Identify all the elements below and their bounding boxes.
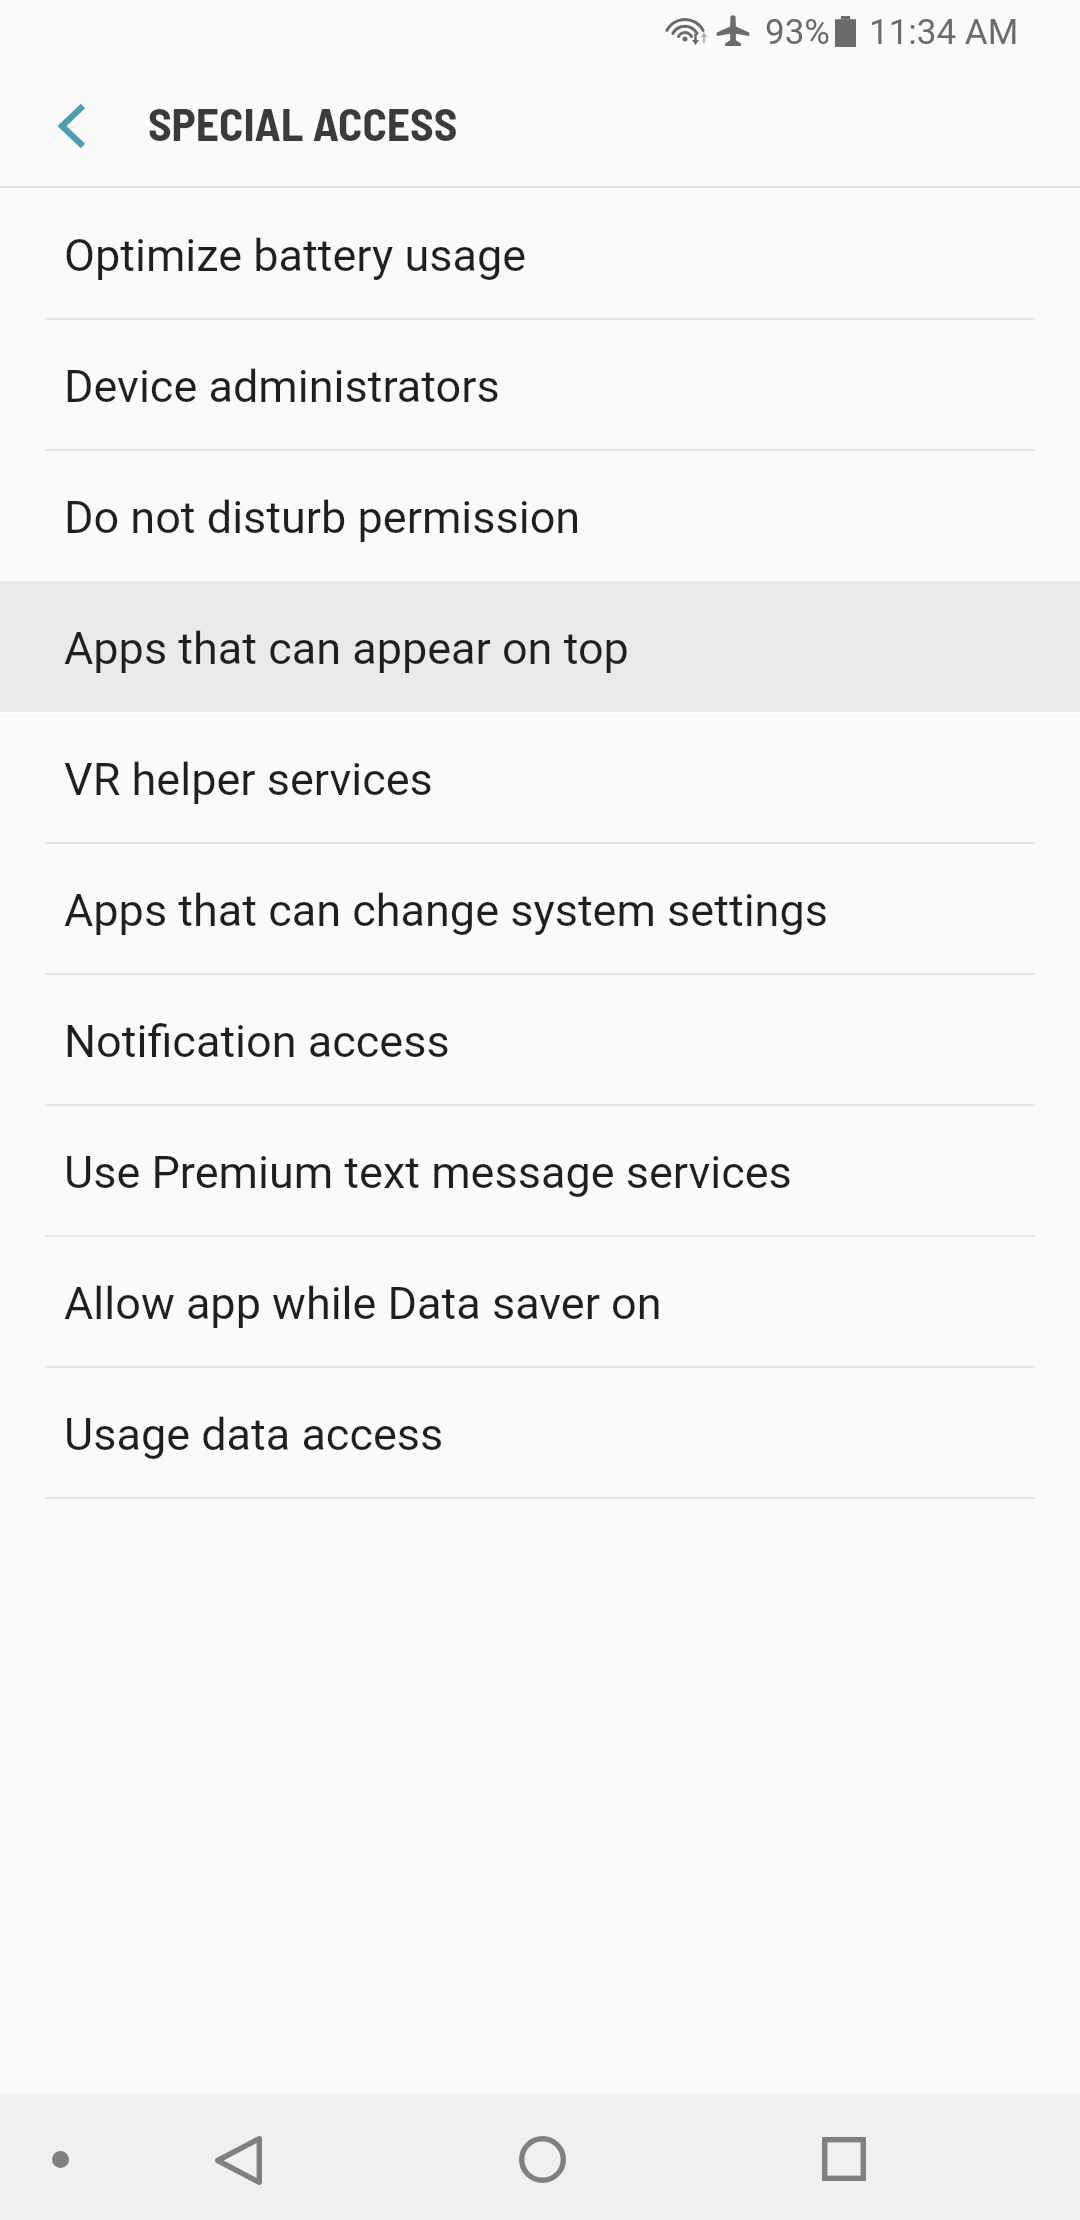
button[interactable]: Use Premium text message services: [0, 1105, 1080, 1236]
staticText: SPECIAL ACCESS: [148, 95, 458, 150]
staticText: Do not disturb permission: [64, 491, 581, 544]
button[interactable]: Notification access: [0, 974, 1080, 1105]
staticText: VR helper services: [64, 753, 433, 806]
button[interactable]: Apps that can change system settings: [0, 843, 1080, 974]
button[interactable]: Do not disturb permission: [0, 450, 1080, 581]
button[interactable]: Usage data access: [0, 1367, 1080, 1498]
button[interactable]: Device administrators: [0, 319, 1080, 450]
button[interactable]: VR helper services: [0, 712, 1080, 843]
staticText: Notification access: [64, 1015, 450, 1068]
staticText: Apps that can appear on top: [64, 622, 629, 675]
staticText: Apps that can change system settings: [64, 884, 828, 937]
staticText: Device administrators: [64, 360, 500, 413]
button[interactable]: Allow app while Data saver on: [0, 1236, 1080, 1367]
staticText: Allow app while Data saver on: [64, 1277, 662, 1330]
staticText: Usage data access: [64, 1408, 444, 1461]
staticText: 11:34 AM: [869, 12, 1019, 53]
staticText: Optimize battery usage: [64, 229, 527, 282]
button[interactable]: Home: [452, 2109, 632, 2209]
staticText: Use Premium text message services: [64, 1146, 792, 1199]
button[interactable]: Navigate up: [12, 76, 132, 176]
staticText: 93%: [765, 12, 830, 53]
button[interactable]: Optimize battery usage: [0, 188, 1080, 319]
button[interactable]: Back: [148, 2110, 328, 2210]
button[interactable]: Apps that can appear on top: [0, 581, 1080, 712]
button[interactable]: Recent apps: [754, 2109, 934, 2209]
button[interactable]: Change keyboard: [18, 2117, 102, 2201]
